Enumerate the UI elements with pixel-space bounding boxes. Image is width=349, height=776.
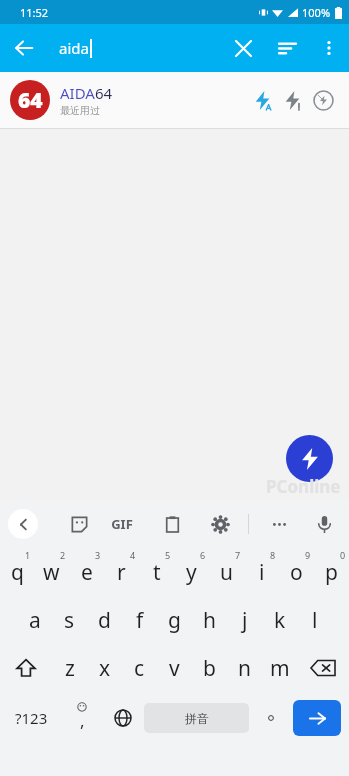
staticText: ?123 bbox=[15, 708, 48, 728]
staticText: 9 bbox=[305, 549, 311, 561]
staticText: 拼音 bbox=[185, 711, 209, 726]
button[interactable]: Stress test bbox=[277, 85, 307, 115]
button[interactable]: 64 bbox=[0, 72, 349, 128]
button[interactable]: r bbox=[104, 548, 139, 596]
staticText: 11:52 bbox=[20, 5, 49, 20]
staticText: w bbox=[43, 558, 60, 587]
button[interactable]: b bbox=[192, 644, 227, 692]
button[interactable]: p bbox=[314, 548, 349, 596]
staticText: s bbox=[64, 606, 75, 635]
button[interactable]: ?123 bbox=[0, 692, 62, 744]
button[interactable]: Clear bbox=[221, 26, 265, 70]
staticText: y bbox=[186, 558, 197, 587]
staticText: v bbox=[169, 654, 180, 683]
button[interactable]: a bbox=[17, 596, 52, 644]
staticText: g bbox=[168, 606, 181, 635]
button[interactable]: t bbox=[139, 548, 174, 596]
button[interactable]: Backspace bbox=[297, 644, 349, 692]
staticText: r bbox=[117, 558, 126, 587]
button[interactable]: m bbox=[262, 644, 297, 692]
button[interactable]: Enter bbox=[293, 700, 341, 736]
button[interactable]: 拼音 bbox=[144, 703, 249, 733]
staticText: 4 bbox=[130, 549, 136, 561]
staticText: 最近用过 bbox=[60, 104, 100, 117]
staticText: 3 bbox=[95, 549, 101, 561]
staticText: 5 bbox=[165, 549, 171, 561]
button[interactable]: g bbox=[157, 596, 192, 644]
staticText: AIDA bbox=[60, 83, 95, 103]
staticText: m bbox=[270, 654, 290, 683]
staticText: o bbox=[290, 558, 303, 587]
button[interactable]: Settings bbox=[203, 507, 237, 541]
button[interactable]: Disable bbox=[307, 84, 339, 116]
staticText: 100% bbox=[302, 5, 331, 20]
button[interactable]: Voice input bbox=[307, 507, 341, 541]
staticText: q bbox=[11, 558, 24, 587]
button[interactable]: Shift bbox=[0, 644, 52, 692]
staticText: 2 bbox=[60, 549, 66, 561]
button[interactable]: i bbox=[244, 548, 279, 596]
staticText: j bbox=[242, 606, 248, 635]
button[interactable]: Sort bbox=[265, 26, 309, 70]
button[interactable]: More bbox=[262, 507, 296, 541]
button[interactable]: d bbox=[87, 596, 122, 644]
staticText: z bbox=[65, 654, 75, 683]
button[interactable]: Period bbox=[249, 692, 293, 744]
button[interactable]: k bbox=[262, 596, 297, 644]
button[interactable]: o bbox=[279, 548, 314, 596]
staticText: l bbox=[312, 606, 318, 635]
button[interactable]: Auto benchmark bbox=[247, 85, 277, 115]
staticText: c bbox=[134, 654, 145, 683]
button[interactable]: z bbox=[52, 644, 87, 692]
button[interactable]: q bbox=[0, 548, 34, 596]
staticText: e bbox=[81, 558, 93, 587]
button[interactable]: s bbox=[52, 596, 87, 644]
staticText: 64 bbox=[18, 86, 43, 115]
staticText: x bbox=[99, 654, 111, 683]
button[interactable]: y bbox=[174, 548, 209, 596]
staticText: 6 bbox=[200, 549, 206, 561]
button[interactable]: More options bbox=[309, 28, 349, 68]
staticText: k bbox=[274, 606, 286, 635]
staticText: f bbox=[136, 606, 144, 635]
button[interactable]: Change language bbox=[102, 692, 144, 744]
button[interactable]: Close toolbar bbox=[8, 509, 38, 539]
button[interactable]: Stickers bbox=[62, 507, 96, 541]
button[interactable]: Benchmark bbox=[286, 435, 333, 482]
button[interactable]: Emoji bbox=[62, 692, 102, 744]
button[interactable]: e bbox=[69, 548, 104, 596]
staticText: PConline bbox=[266, 475, 341, 498]
staticText: 0 bbox=[340, 549, 346, 561]
staticText: 8 bbox=[270, 549, 276, 561]
button[interactable]: c bbox=[122, 644, 157, 692]
button[interactable]: h bbox=[192, 596, 227, 644]
staticText: d bbox=[98, 606, 111, 635]
staticText: n bbox=[238, 654, 251, 683]
button[interactable]: v bbox=[157, 644, 192, 692]
staticText: i bbox=[259, 558, 265, 587]
staticText: t bbox=[153, 558, 161, 587]
button[interactable]: GIF bbox=[105, 507, 139, 541]
staticText: , bbox=[80, 709, 85, 732]
staticText: b bbox=[203, 654, 216, 683]
button[interactable]: Clipboard bbox=[155, 507, 189, 541]
button[interactable]: w bbox=[34, 548, 69, 596]
button[interactable]: f bbox=[122, 596, 157, 644]
staticText: p bbox=[325, 558, 338, 587]
staticText: u bbox=[220, 558, 233, 587]
button[interactable]: x bbox=[87, 644, 122, 692]
staticText: h bbox=[203, 606, 216, 635]
staticText: 1 bbox=[25, 549, 31, 561]
staticText: a bbox=[29, 606, 41, 635]
staticText: 7 bbox=[235, 549, 241, 561]
button[interactable]: u bbox=[209, 548, 244, 596]
button[interactable]: j bbox=[227, 596, 262, 644]
staticText: 64 bbox=[95, 83, 113, 103]
button[interactable]: l bbox=[297, 596, 332, 644]
button[interactable]: Back bbox=[4, 28, 44, 68]
button[interactable]: n bbox=[227, 644, 262, 692]
staticText: aida bbox=[59, 38, 89, 58]
